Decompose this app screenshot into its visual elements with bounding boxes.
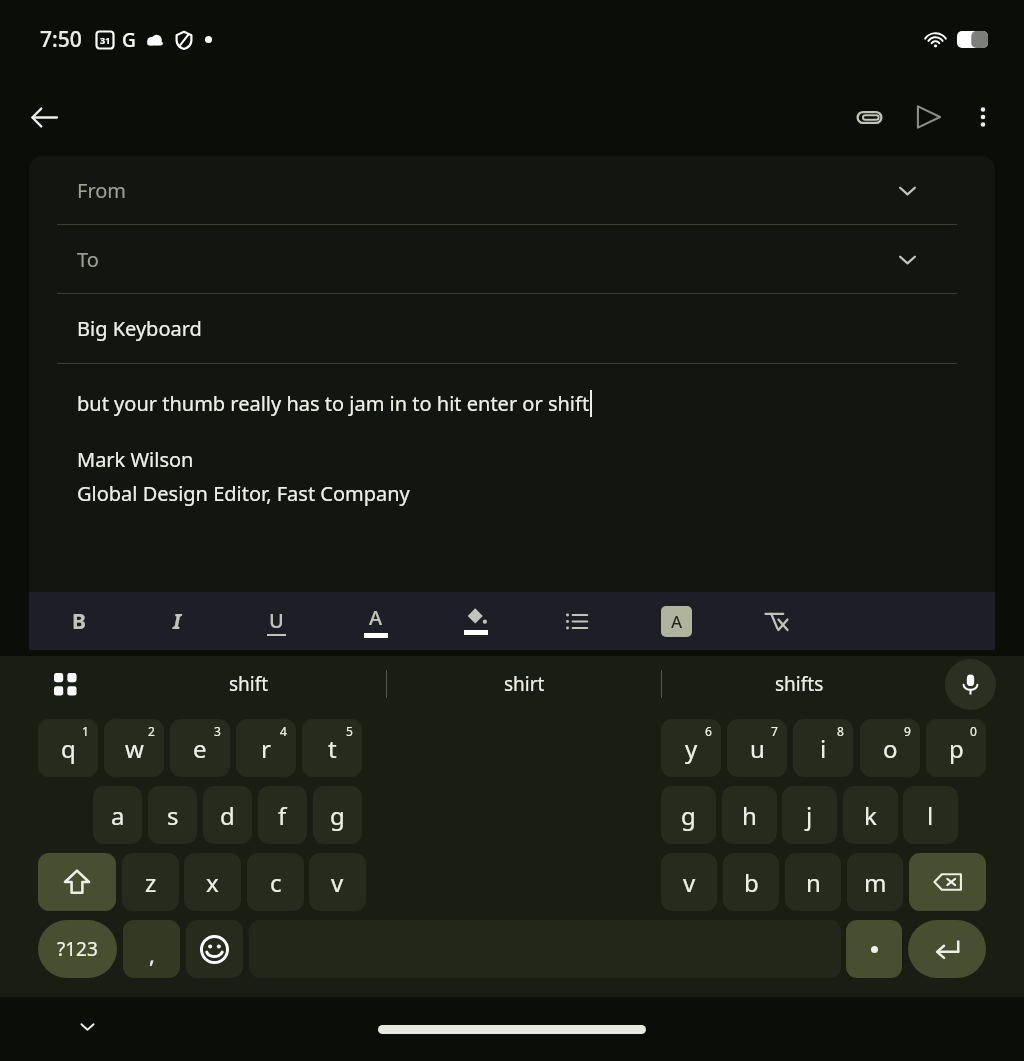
button[interactable]: but your thumb really has to jam in to h… xyxy=(77,390,995,507)
button[interactable]: shift xyxy=(112,656,386,712)
button[interactable]: g xyxy=(661,786,716,844)
button[interactable]: Backspace xyxy=(909,853,986,911)
button[interactable] xyxy=(846,920,902,978)
staticText: e xyxy=(193,732,207,765)
staticText: but your thumb really has to jam in to h… xyxy=(77,390,590,417)
button[interactable]: c xyxy=(247,853,304,911)
button[interactable]: v xyxy=(661,853,717,911)
staticText: f xyxy=(278,799,287,832)
staticText: , xyxy=(149,939,155,969)
button[interactable]: q xyxy=(38,719,98,777)
button[interactable]: h xyxy=(722,786,777,844)
button[interactable]: More options xyxy=(958,92,1008,142)
staticText: 5 xyxy=(346,723,353,739)
staticText: h xyxy=(742,799,757,832)
staticText: b xyxy=(744,866,759,899)
button[interactable]: TextStyle xyxy=(626,592,726,650)
staticText: q xyxy=(61,732,76,765)
staticText: v xyxy=(331,866,344,899)
button[interactable]: To xyxy=(29,225,995,294)
button[interactable]: f xyxy=(258,786,307,844)
button[interactable]: j xyxy=(782,786,837,844)
button[interactable]: d xyxy=(203,786,252,844)
button[interactable]: Bold xyxy=(29,592,128,650)
button[interactable]: u xyxy=(727,719,787,777)
button[interactable]: l xyxy=(903,786,958,844)
button[interactable]: k xyxy=(843,786,898,844)
staticText: n xyxy=(806,866,821,899)
button[interactable]: e xyxy=(170,719,230,777)
staticText: 7:50 xyxy=(40,25,82,54)
staticText: A xyxy=(369,604,383,631)
button[interactable]: g xyxy=(313,786,362,844)
button[interactable]: Underline xyxy=(227,592,326,650)
staticText: u xyxy=(750,732,765,765)
button[interactable]: Highlight xyxy=(426,592,526,650)
staticText: g xyxy=(681,799,696,832)
button[interactable]: TextColor xyxy=(326,592,426,650)
button[interactable]: Keyboard options xyxy=(42,661,88,707)
staticText: l xyxy=(927,799,934,832)
button[interactable]: ClearFormat xyxy=(726,592,826,650)
staticText: To xyxy=(77,246,99,273)
staticText: U xyxy=(269,607,284,634)
button[interactable]: shirt xyxy=(387,656,661,712)
button[interactable]: shifts xyxy=(662,656,936,712)
staticText: 7 xyxy=(771,723,778,739)
button[interactable]: s xyxy=(148,786,197,844)
button[interactable]: Big Keyboard xyxy=(29,294,995,363)
staticText: 0 xyxy=(970,723,977,739)
staticText: i xyxy=(820,732,827,765)
staticText: B xyxy=(72,607,86,636)
button[interactable]: y xyxy=(661,719,721,777)
staticText: x xyxy=(206,866,219,899)
button[interactable]: Italic xyxy=(128,592,227,650)
staticText: I xyxy=(173,607,182,636)
button[interactable]: Hide keyboard xyxy=(66,1005,108,1047)
button[interactable]: Attach file xyxy=(844,92,894,142)
button[interactable]: v xyxy=(309,853,366,911)
staticText: 6 xyxy=(705,723,712,739)
staticText: 9 xyxy=(904,723,911,739)
staticText: 31 xyxy=(100,34,111,46)
button[interactable]: Shift xyxy=(38,853,116,911)
button[interactable]: z xyxy=(122,853,179,911)
staticText: Big Keyboard xyxy=(77,315,202,342)
button[interactable]: t xyxy=(302,719,362,777)
button[interactable]: Enter xyxy=(908,920,986,978)
staticText: shifts xyxy=(775,671,824,697)
staticText: o xyxy=(883,732,898,765)
staticText: r xyxy=(261,732,271,765)
staticText: y xyxy=(685,732,698,765)
button[interactable]: n xyxy=(785,853,841,911)
button[interactable]: m xyxy=(847,853,903,911)
button[interactable]: From xyxy=(29,156,995,225)
staticText: z xyxy=(145,866,157,899)
staticText: G xyxy=(122,27,136,53)
button[interactable]: p xyxy=(926,719,986,777)
staticText: d xyxy=(220,799,235,832)
staticText: a xyxy=(111,799,125,832)
button[interactable]: o xyxy=(860,719,920,777)
button[interactable]: x xyxy=(184,853,241,911)
button[interactable]: BulletList xyxy=(526,592,626,650)
button[interactable]: b xyxy=(723,853,779,911)
staticText: Global Design Editor, Fast Company xyxy=(77,480,410,507)
staticText: ?123 xyxy=(57,936,98,962)
button[interactable]: Voice input xyxy=(945,659,996,710)
button[interactable]: r xyxy=(236,719,296,777)
staticText: g xyxy=(330,799,345,832)
button[interactable]: i xyxy=(793,719,853,777)
button[interactable]: Send xyxy=(903,92,953,142)
staticText: From xyxy=(77,177,127,204)
staticText: Mark Wilson xyxy=(77,446,194,473)
button[interactable]: w xyxy=(104,719,164,777)
staticText: A xyxy=(671,610,683,633)
button[interactable]: a xyxy=(93,786,142,844)
staticText: shift xyxy=(229,671,269,697)
button[interactable]: ?123 xyxy=(38,920,117,978)
button[interactable]: Emoji xyxy=(186,920,243,978)
button[interactable]: Back xyxy=(20,93,68,141)
button[interactable]: , xyxy=(123,920,180,978)
